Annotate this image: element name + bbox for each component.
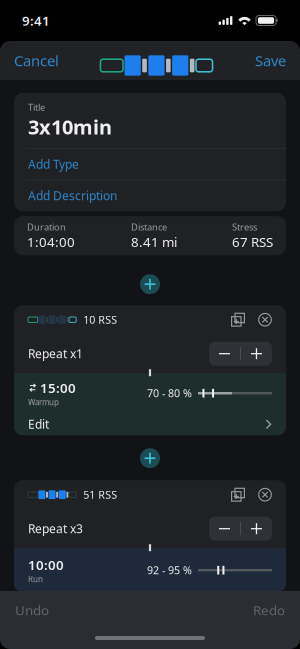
staticText: Title	[28, 101, 45, 113]
staticText: Edit	[28, 416, 49, 432]
button[interactable]: Duplicate block	[231, 488, 245, 502]
staticText: Redo	[253, 601, 285, 619]
staticText: Distance	[131, 221, 167, 233]
staticText: Add Description	[28, 188, 117, 204]
button[interactable]: Save	[241, 41, 300, 80]
staticText: Stress	[232, 221, 257, 233]
staticText: 67 RSS	[232, 233, 273, 251]
staticText: 92 - 95 %	[147, 563, 192, 577]
staticText: Warmup	[28, 397, 59, 407]
staticText: 8.41 mi	[131, 233, 177, 251]
staticText: 3x10min	[28, 113, 112, 140]
staticText: 51 RSS	[83, 488, 117, 502]
staticText: 10:00	[28, 556, 64, 574]
button[interactable]: Add Type	[14, 149, 286, 180]
staticText: 15:00	[40, 379, 76, 397]
staticText: 9:41	[22, 12, 50, 29]
staticText: Add Type	[28, 156, 79, 172]
staticText: 70 - 80 %	[147, 386, 192, 400]
button[interactable]: Add Description	[14, 180, 286, 211]
staticText: Repeat x3	[28, 521, 83, 537]
button[interactable]: Duplicate block	[231, 313, 245, 327]
staticText: 10 RSS	[83, 313, 117, 327]
staticText: 1:04:00	[27, 233, 75, 251]
button[interactable]: Increase repeats	[241, 517, 272, 541]
button[interactable]: Redo	[238, 595, 300, 625]
button[interactable]: Delete block	[245, 313, 272, 327]
staticText: Cancel	[14, 51, 59, 70]
staticText: Duration	[27, 221, 66, 233]
button[interactable]: Decrease repeats	[209, 517, 240, 541]
staticText: Run	[28, 574, 43, 584]
button[interactable]: Undo	[0, 595, 64, 625]
button[interactable]: Add interval	[140, 274, 160, 294]
button[interactable]: Edit	[14, 413, 286, 435]
staticText: Repeat x1	[28, 346, 83, 362]
staticText: Save	[255, 51, 286, 70]
button[interactable]: Increase repeats	[241, 342, 272, 366]
button[interactable]: Decrease repeats	[209, 342, 240, 366]
button[interactable]: Delete block	[245, 488, 272, 502]
button[interactable]: Cancel	[0, 41, 73, 80]
staticText: Undo	[15, 601, 49, 619]
button[interactable]: Add interval	[140, 448, 160, 468]
